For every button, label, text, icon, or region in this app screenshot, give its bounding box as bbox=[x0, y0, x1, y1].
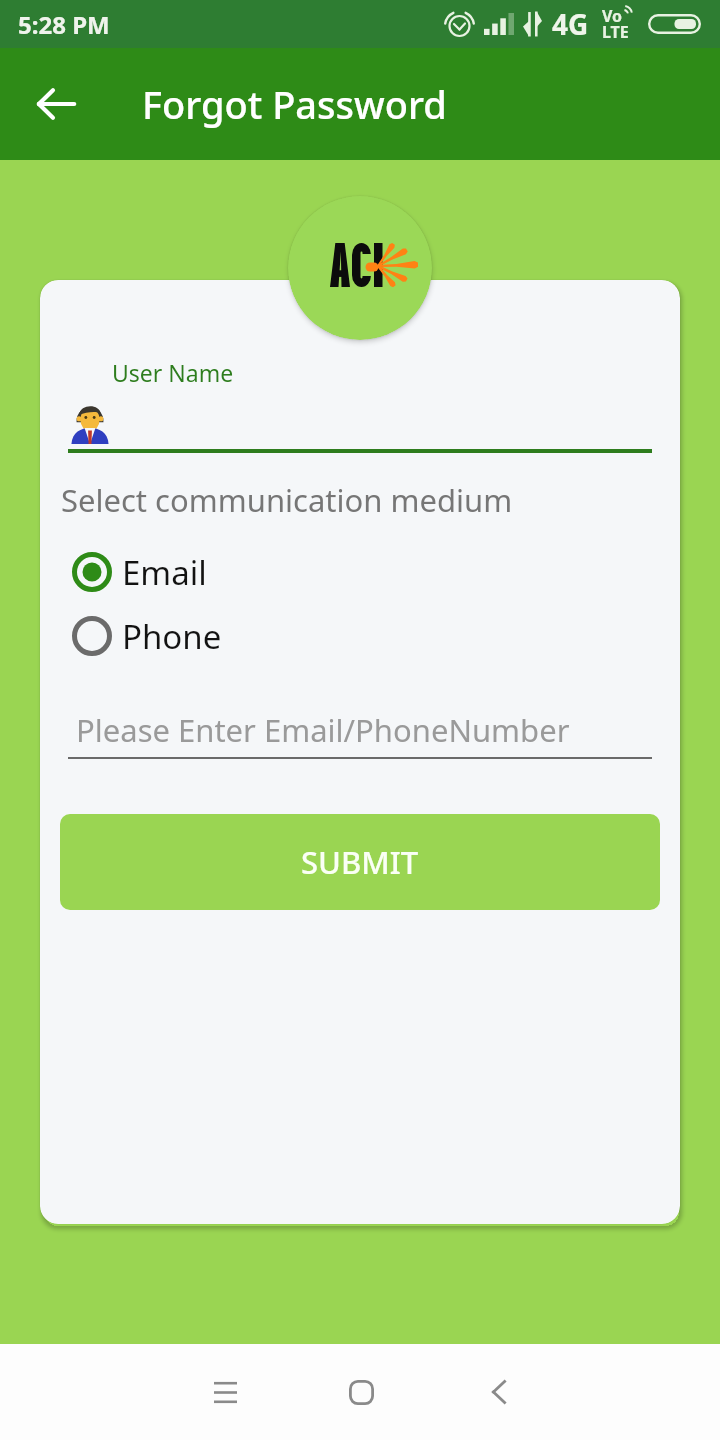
staticText: 5:28 PM bbox=[18, 8, 110, 41]
button[interactable]: Email bbox=[70, 542, 207, 602]
button[interactable]: Please Enter Email/PhoneNumber bbox=[68, 700, 652, 759]
button[interactable]: Home bbox=[325, 1356, 397, 1428]
button[interactable]: Recent apps bbox=[189, 1356, 261, 1428]
staticText: LTE bbox=[602, 21, 629, 43]
button[interactable]: Back bbox=[463, 1356, 535, 1428]
button[interactable]: Back bbox=[21, 69, 91, 139]
staticText: SUBMIT bbox=[301, 841, 419, 883]
staticText: Please Enter Email/PhoneNumber bbox=[76, 709, 570, 751]
staticText: Forgot Password bbox=[142, 78, 447, 130]
staticText: Vo bbox=[602, 5, 623, 27]
staticText: User Name bbox=[112, 357, 234, 388]
button[interactable]: Phone bbox=[70, 606, 222, 666]
staticText: Select communication medium bbox=[61, 479, 513, 521]
staticText: Email bbox=[122, 550, 207, 595]
staticText: 4G bbox=[552, 5, 589, 43]
button[interactable]: SUBMIT bbox=[60, 814, 660, 910]
button[interactable]: User Name bbox=[68, 350, 652, 453]
staticText: Phone bbox=[122, 614, 222, 659]
